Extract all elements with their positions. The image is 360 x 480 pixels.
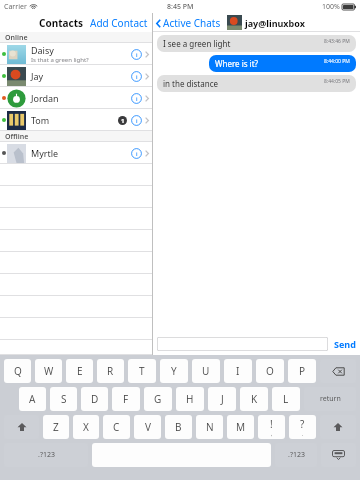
button[interactable]: J — [208, 387, 236, 411]
staticText: C — [113, 420, 120, 434]
staticText: Q — [14, 364, 22, 378]
staticText: Tom — [31, 114, 50, 126]
button[interactable]: F — [112, 387, 140, 411]
staticText: 8:44:05 PM — [324, 78, 350, 85]
staticText: M — [236, 420, 246, 434]
button[interactable]: Tom — [0, 109, 152, 131]
staticText: Add Contact — [90, 16, 148, 30]
button[interactable]: P — [288, 359, 316, 383]
button[interactable]: Active Chats — [156, 16, 221, 30]
staticText: 100% — [322, 2, 340, 12]
staticText: 8:43:46 PM — [324, 38, 350, 45]
button[interactable]: N — [196, 415, 223, 439]
button[interactable]: R — [97, 359, 124, 383]
button[interactable]: Where is it? — [209, 55, 356, 72]
staticText: ! — [270, 417, 273, 431]
button[interactable]: C — [103, 415, 130, 439]
staticText: Send — [334, 338, 356, 350]
staticText: Jay — [31, 70, 44, 82]
button[interactable]: G — [144, 387, 172, 411]
button[interactable]: Backspace — [320, 359, 356, 383]
staticText: Z — [53, 420, 59, 434]
staticText: T — [139, 364, 145, 378]
button[interactable]: .?123 — [4, 443, 88, 467]
button[interactable]: O — [256, 359, 284, 383]
staticText: Carrier — [4, 2, 27, 12]
button[interactable]: V — [134, 415, 161, 439]
staticText: I see a green light — [163, 38, 231, 49]
staticText: jay@linuxbox — [245, 17, 305, 29]
staticText: N — [206, 420, 214, 434]
button[interactable]: Info for Myrtle — [131, 148, 142, 159]
button[interactable]: W — [35, 359, 62, 383]
button[interactable]: Add Contact — [90, 16, 148, 30]
staticText: Y — [171, 364, 177, 378]
button[interactable]: B — [165, 415, 192, 439]
button[interactable]: Info for Tom — [131, 115, 142, 126]
button[interactable]: in the distance — [157, 75, 356, 92]
button[interactable]: Myrtle — [0, 142, 152, 164]
button[interactable]: Hide keyboard — [321, 443, 356, 467]
button[interactable]: Info for Jordan — [131, 93, 142, 104]
button[interactable]: Send — [334, 338, 356, 350]
staticText: in the distance — [163, 78, 218, 89]
staticText: 1 — [121, 117, 125, 125]
staticText: P — [299, 364, 306, 378]
staticText: 8:44:00 PM — [324, 58, 350, 65]
staticText: F — [123, 392, 129, 406]
staticText: ? — [300, 417, 305, 431]
staticText: V — [145, 420, 151, 434]
staticText: Online — [5, 33, 28, 43]
button[interactable]: Info for Daisy — [131, 49, 142, 60]
button[interactable]: K — [240, 387, 268, 411]
button[interactable]: Z — [43, 415, 69, 439]
button[interactable]: .?123 — [275, 443, 317, 467]
staticText: 8:45 PM — [167, 2, 194, 12]
staticText: O — [266, 364, 274, 378]
staticText: , — [271, 431, 273, 438]
button[interactable]: E — [66, 359, 93, 383]
button[interactable] — [157, 337, 328, 351]
button[interactable]: Jay — [0, 65, 152, 87]
staticText: Daisy — [31, 44, 54, 56]
button[interactable]: Shift — [4, 415, 39, 439]
button[interactable]: I — [224, 359, 252, 383]
staticText: U — [202, 364, 210, 378]
button[interactable]: M — [227, 415, 254, 439]
staticText: i — [136, 51, 138, 59]
staticText: B — [175, 420, 182, 434]
button[interactable]: Daisy — [0, 43, 152, 65]
staticText: i — [136, 73, 138, 81]
staticText: H — [186, 392, 194, 406]
staticText: L — [283, 392, 289, 406]
button[interactable]: H — [176, 387, 204, 411]
staticText: i — [136, 150, 138, 158]
button[interactable]: Jordan — [0, 87, 152, 109]
button[interactable]: ! — [258, 415, 285, 439]
button[interactable]: X — [73, 415, 99, 439]
button[interactable]: D — [81, 387, 108, 411]
button[interactable]: Shift right — [320, 415, 356, 439]
staticText: .?123 — [38, 450, 55, 460]
button[interactable]: Info for Jay — [131, 71, 142, 82]
staticText: Contacts — [39, 16, 84, 30]
staticText: Is that a green light? — [31, 56, 89, 64]
button[interactable]: L — [272, 387, 300, 411]
staticText: X — [83, 420, 89, 434]
button[interactable]: return — [304, 387, 356, 411]
button[interactable]: T — [128, 359, 156, 383]
button[interactable]: I see a green light — [157, 35, 356, 52]
button[interactable]: Q — [4, 359, 31, 383]
staticText: Offline — [5, 132, 29, 142]
button[interactable]: U — [192, 359, 220, 383]
staticText: Active Chats — [163, 16, 221, 30]
staticText: i — [136, 95, 138, 103]
button[interactable]: ? — [289, 415, 316, 439]
button[interactable]: Y — [160, 359, 188, 383]
staticText: A — [29, 392, 36, 406]
staticText: R — [107, 364, 114, 378]
button[interactable]: S — [50, 387, 77, 411]
button[interactable]: A — [19, 387, 46, 411]
staticText: J — [221, 392, 224, 406]
